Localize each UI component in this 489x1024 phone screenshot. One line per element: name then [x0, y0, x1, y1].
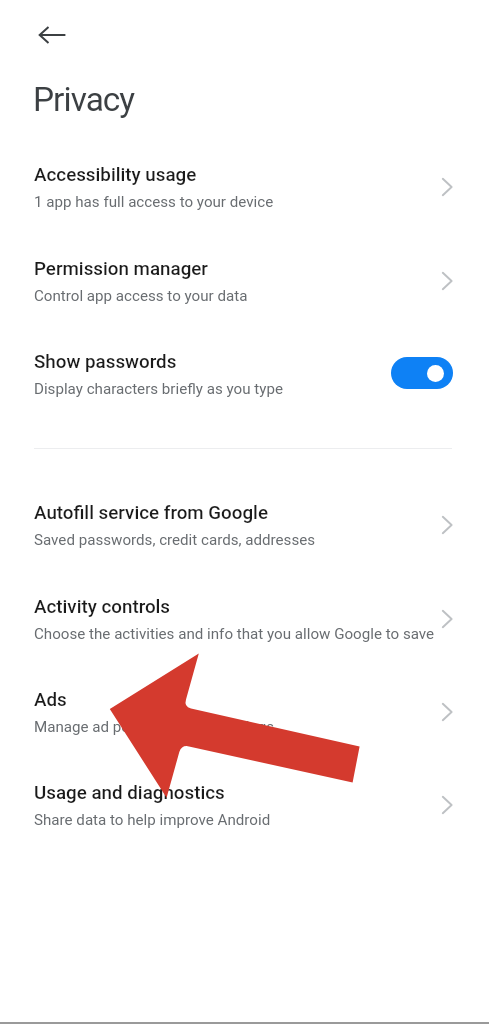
button[interactable]: Back [30, 13, 75, 58]
button[interactable]: Accessibility usage [0, 146, 489, 222]
staticText: Manage ad personalization settings [34, 718, 275, 736]
staticText: Privacy [33, 80, 135, 119]
staticText: Control app access to your data [34, 287, 248, 305]
button[interactable]: Permission manager [0, 240, 489, 316]
staticText: Permission manager [34, 258, 208, 280]
staticText: Ads [34, 689, 67, 711]
staticText: Activity controls [34, 596, 171, 618]
button[interactable]: Show passwords [0, 333, 489, 409]
button[interactable]: Activity controls [0, 578, 489, 654]
button[interactable]: Autofill service from Google [0, 484, 489, 560]
staticText: 1 app has full access to your device [34, 193, 274, 211]
staticText: Share data to help improve Android [34, 811, 271, 829]
staticText: Saved passwords, credit cards, addresses [34, 531, 316, 549]
button[interactable]: Ads [0, 671, 489, 747]
button[interactable]: Show passwords, on [391, 357, 453, 389]
staticText: Usage and diagnostics [34, 782, 225, 804]
staticText: Display characters briefly as you type [34, 380, 283, 398]
staticText: Show passwords [34, 351, 177, 373]
staticText: Accessibility usage [34, 164, 197, 186]
staticText: Autofill service from Google [34, 502, 268, 524]
staticText: Choose the activities and info that you … [34, 625, 435, 643]
button[interactable]: Usage and diagnostics [0, 764, 489, 840]
